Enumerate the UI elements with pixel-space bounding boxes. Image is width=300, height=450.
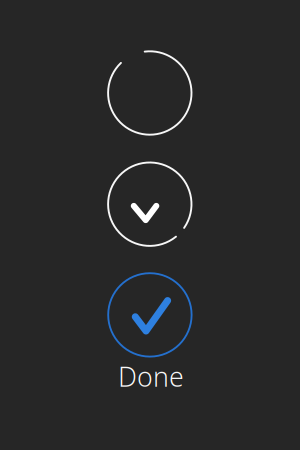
- button[interactable]: Loading: [0, 0, 300, 450]
- button[interactable]: Done: [0, 0, 300, 450]
- button[interactable]: Collapse: [0, 0, 300, 450]
- staticText: Done: [118, 359, 184, 394]
